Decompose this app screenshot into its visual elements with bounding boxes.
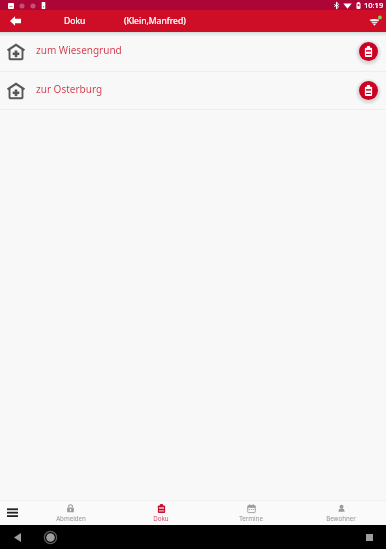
button[interactable]: Loeschen [357, 79, 380, 102]
staticText: Termine [239, 514, 263, 522]
button[interactable]: zum Wiesengrund [0, 32, 386, 71]
button[interactable]: Recents [360, 528, 378, 546]
staticText: 10:19 [364, 0, 384, 10]
staticText: zur Osterburg [36, 82, 103, 96]
button[interactable]: Menu [0, 500, 25, 525]
staticText: Bewohner [326, 514, 356, 522]
button[interactable]: Back [8, 528, 26, 546]
button[interactable]: Doku [116, 500, 206, 525]
button[interactable]: Loeschen [357, 40, 380, 63]
button[interactable]: Home [41, 528, 59, 546]
button[interactable]: WLAN status [364, 10, 386, 32]
button[interactable]: Abmelden [25, 500, 116, 525]
staticText: (Klein,Manfred) [124, 15, 186, 27]
staticText: zum Wiesengrund [36, 43, 122, 57]
staticText: Doku [153, 514, 169, 522]
button[interactable]: zur Osterburg [0, 72, 386, 109]
staticText: Abmelden [56, 514, 86, 522]
button[interactable]: Bewohner [296, 500, 386, 525]
button[interactable]: Termine [206, 500, 296, 525]
button[interactable]: Back [0, 10, 30, 32]
staticText: Doku [64, 15, 86, 27]
